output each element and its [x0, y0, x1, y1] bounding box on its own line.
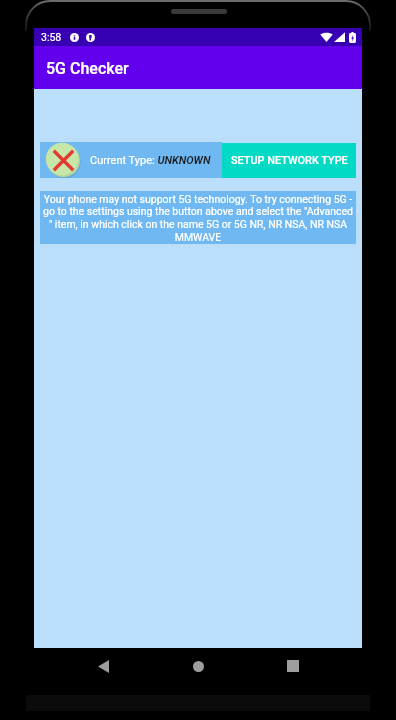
button[interactable]: Back — [96, 659, 110, 673]
button[interactable]: SETUP NETWORK TYPE — [222, 143, 356, 178]
staticText: 3:58 — [41, 31, 62, 43]
staticText: Current Type: UNKNOWN — [90, 154, 211, 167]
staticText: 5G Checker — [46, 59, 129, 78]
button[interactable]: Recents — [286, 659, 300, 673]
staticText: SETUP NETWORK TYPE — [231, 154, 348, 167]
button[interactable]: Current Type: UNKNOWN — [40, 142, 222, 178]
button[interactable]: Home — [191, 659, 205, 673]
staticText: Your phone may not support 5G technology… — [42, 193, 354, 243]
